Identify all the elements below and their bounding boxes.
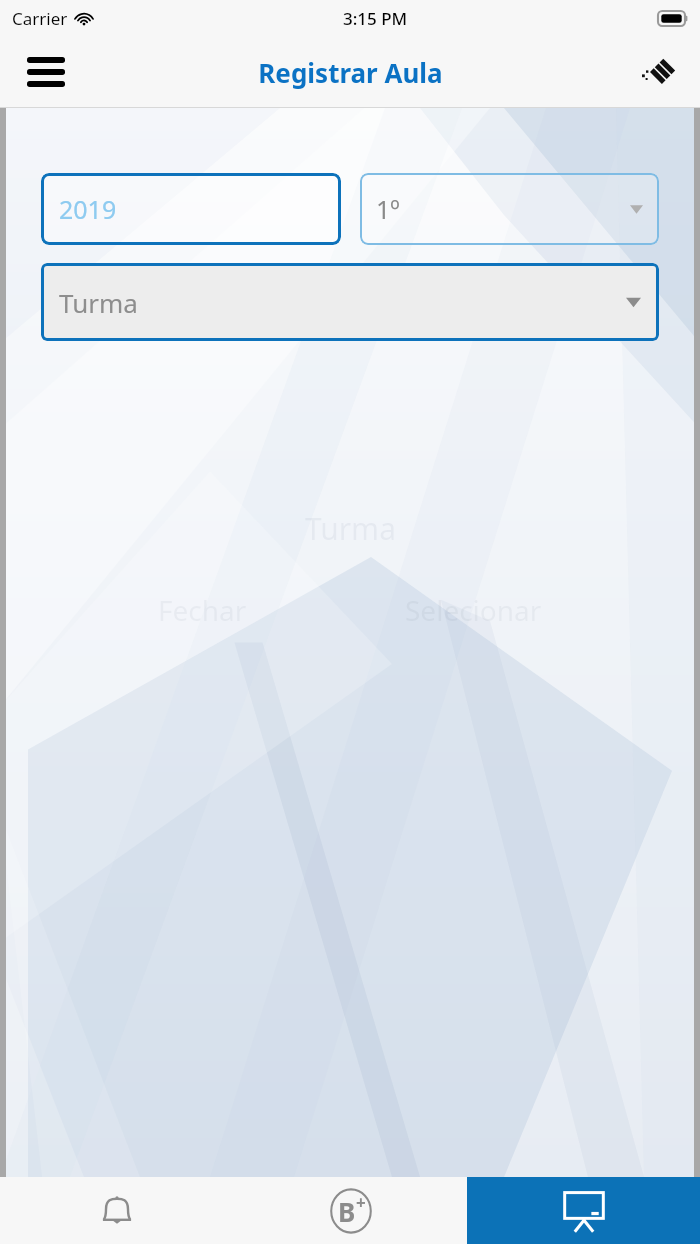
button[interactable]: Menu <box>18 44 74 100</box>
staticText: Turma <box>305 508 396 549</box>
button[interactable]: Turma <box>41 263 659 341</box>
button[interactable]: Registrar Aula <box>467 1177 700 1244</box>
staticText: Fechar <box>158 591 247 629</box>
staticText: B <box>338 1194 356 1229</box>
staticText: Selecionar <box>405 591 542 629</box>
button[interactable]: Boletim <box>234 1177 467 1244</box>
button[interactable]: 1º <box>360 173 659 245</box>
staticText: Turma <box>59 285 138 320</box>
staticText: Registrar Aula <box>258 55 443 90</box>
staticText: 3:15 PM <box>343 7 408 30</box>
button[interactable]: App logo <box>630 44 686 100</box>
staticText: Carrier <box>12 7 68 30</box>
button[interactable]: Notifications <box>0 1177 234 1244</box>
button[interactable]: 2019 <box>41 173 341 245</box>
staticText: 1º <box>376 192 400 226</box>
staticText: 2019 <box>59 192 117 226</box>
staticText: + <box>356 1191 366 1214</box>
